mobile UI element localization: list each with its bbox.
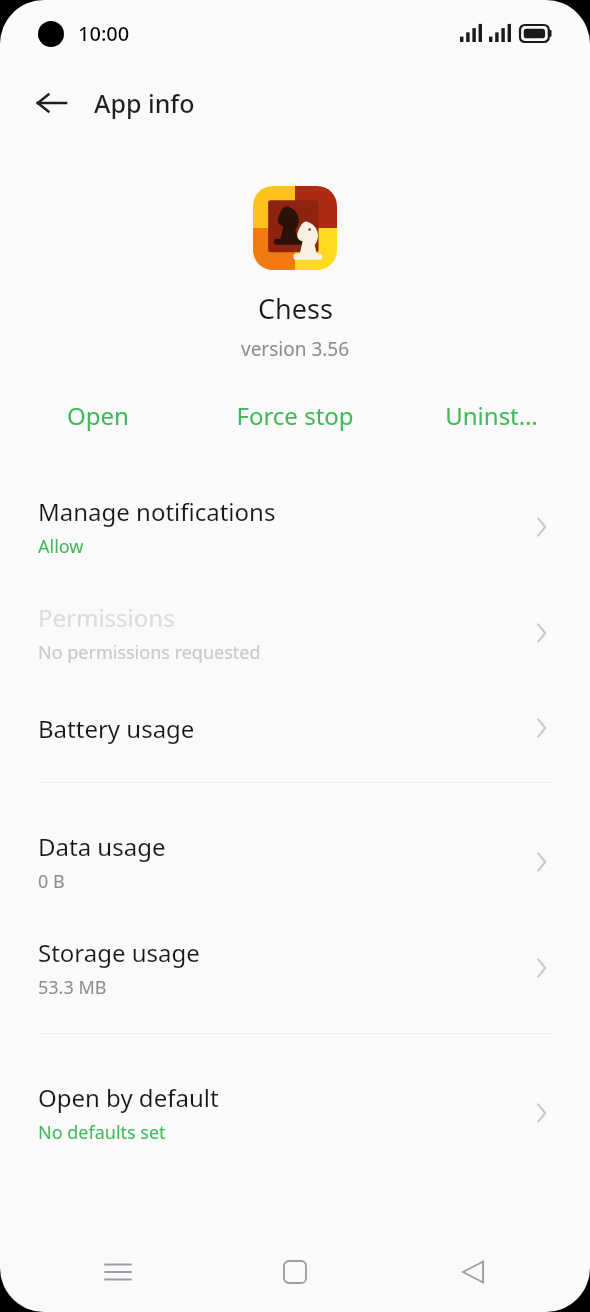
staticText: Manage notifications [38,495,276,528]
staticText: version 3.56 [241,336,350,362]
staticText: Uninst… [445,399,538,432]
button[interactable]: Force stop [196,388,393,442]
staticText: Battery usage [38,712,195,745]
button[interactable]: Permissions [0,580,590,686]
button[interactable]: Back [26,77,78,129]
button[interactable]: Recent apps [58,1236,178,1308]
staticText: Data usage [38,830,166,863]
staticText: Open by default [38,1081,219,1114]
staticText: Chess [258,290,333,327]
staticText: Force stop [236,399,354,432]
staticText: No permissions requested [38,640,261,665]
staticText: App info [94,86,195,120]
button[interactable]: Back [413,1236,533,1308]
staticText: Storage usage [38,936,200,969]
staticText: 10:00 [78,20,130,47]
staticText: 0 B [38,869,65,894]
button[interactable]: Data usage [0,809,590,915]
staticText: Permissions [38,601,175,634]
staticText: Open [67,399,129,432]
button[interactable]: Uninst… [393,388,590,442]
button[interactable]: Storage usage [0,915,590,1021]
staticText: No defaults set [38,1120,166,1145]
button[interactable]: Open [0,388,196,442]
button[interactable]: Battery usage [0,686,590,770]
button[interactable]: Open by default [0,1060,590,1166]
button[interactable]: Home [235,1236,355,1308]
staticText: 53.3 MB [38,975,107,1000]
staticText: Allow [38,534,84,559]
button[interactable]: Manage notifications [0,474,590,580]
